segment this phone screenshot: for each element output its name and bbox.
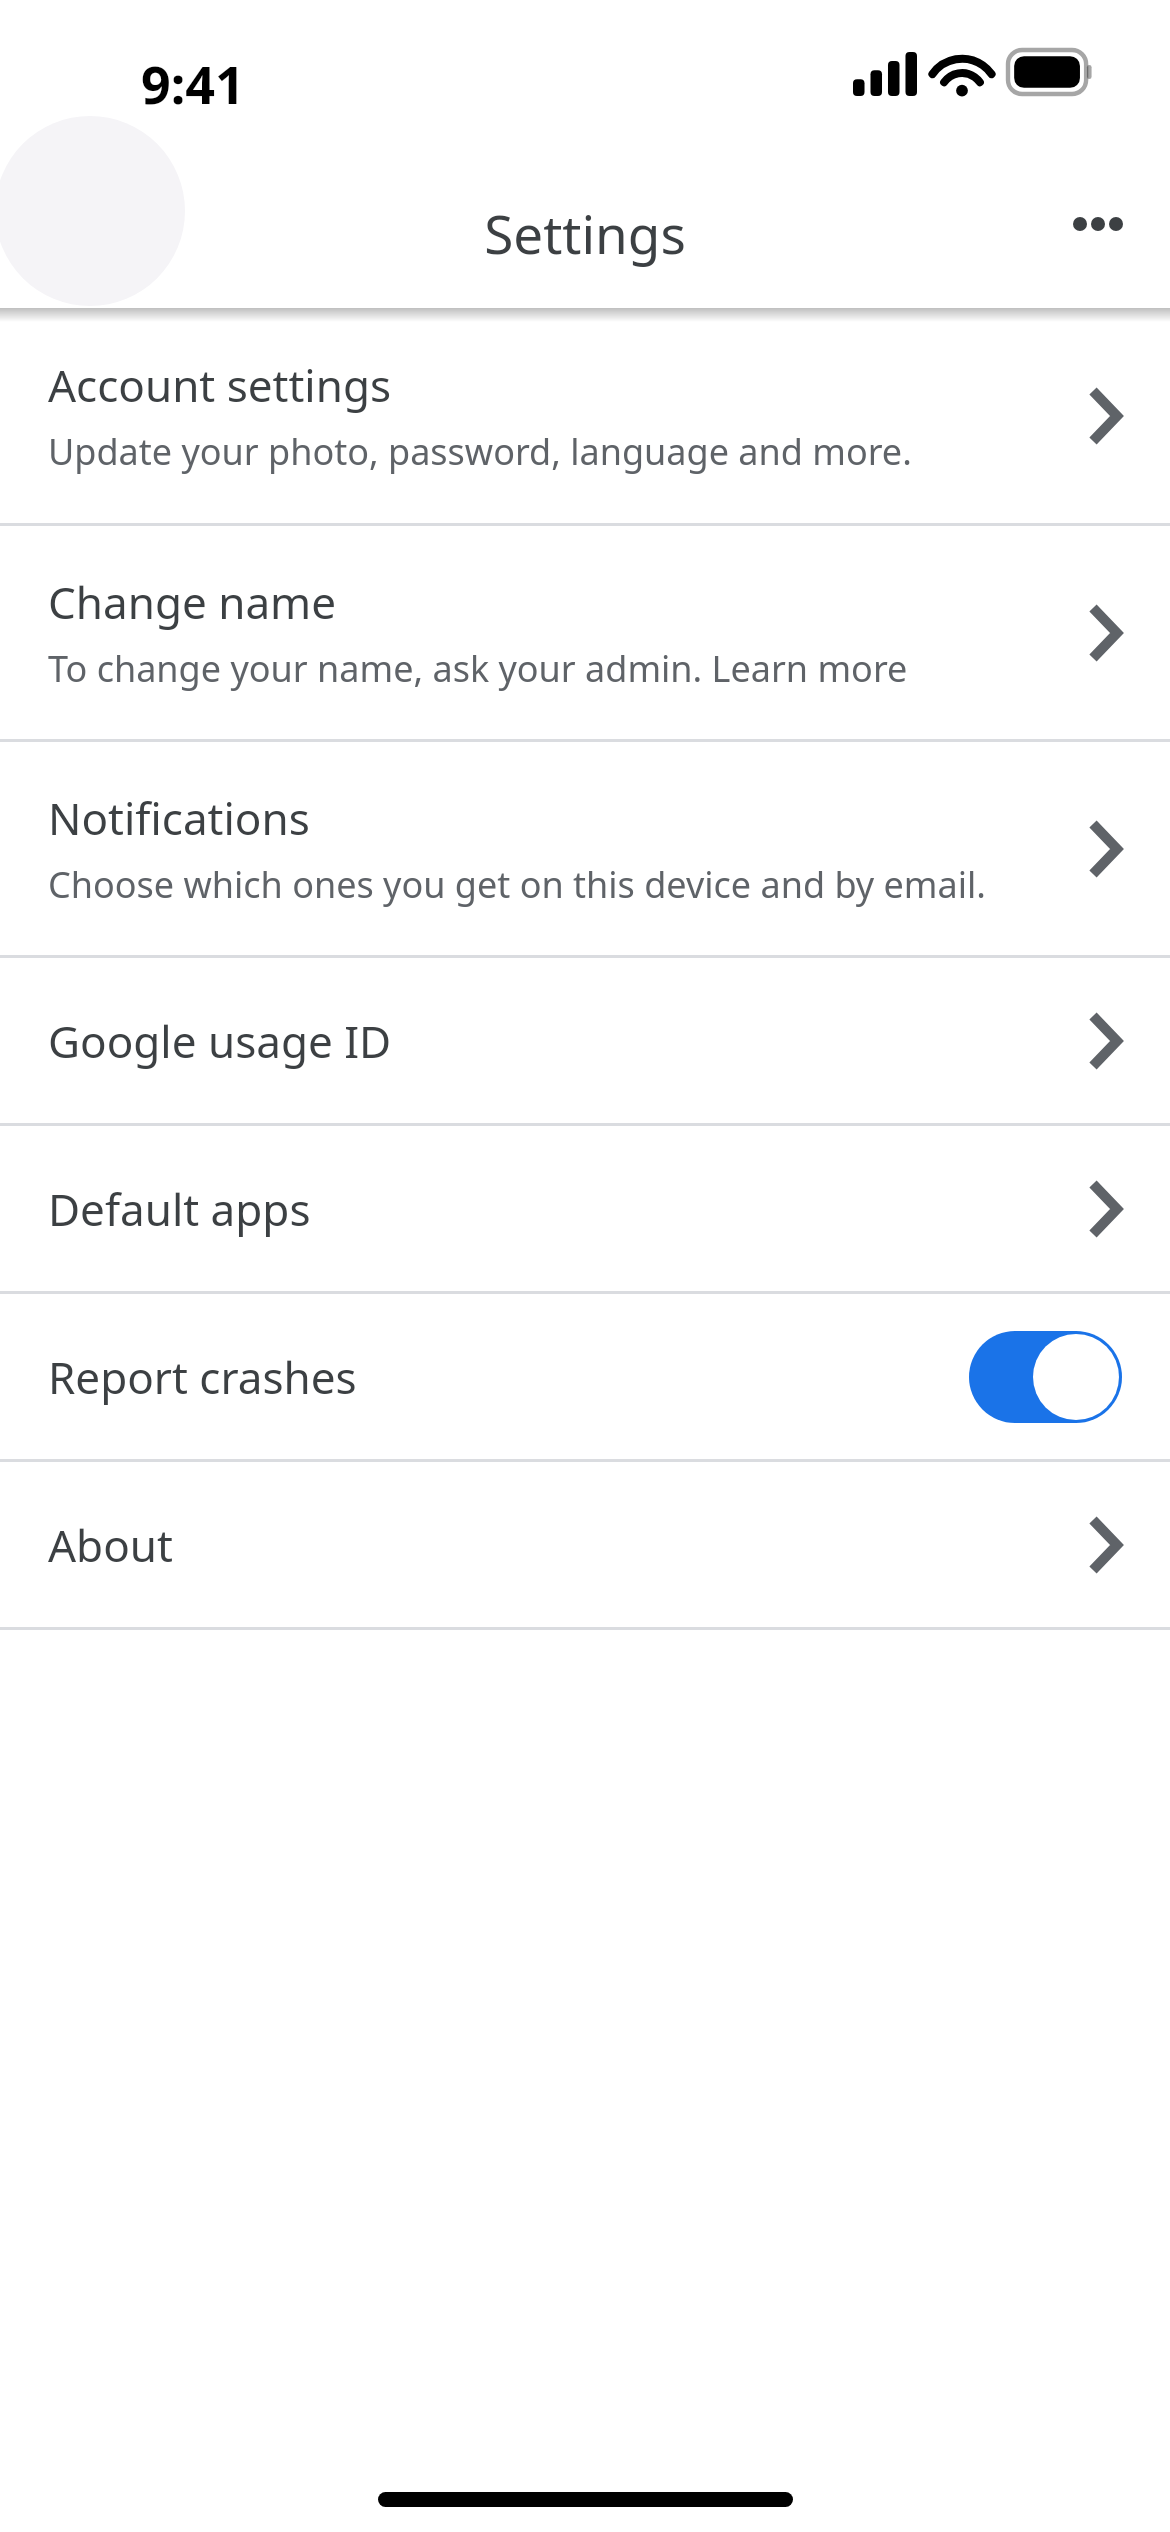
button[interactable]: Account settings bbox=[0, 308, 1170, 523]
staticText: Google usage ID bbox=[48, 1011, 1088, 1071]
button[interactable]: About bbox=[0, 1462, 1170, 1627]
button[interactable]: Change name bbox=[0, 526, 1170, 739]
staticText: Change name bbox=[48, 572, 337, 632]
staticText: Choose which ones you get on this device… bbox=[48, 860, 986, 909]
button[interactable]: Report crashes toggle bbox=[969, 1331, 1122, 1423]
button[interactable]: Notifications bbox=[0, 742, 1170, 955]
staticText: Notifications bbox=[48, 788, 310, 848]
staticText: About bbox=[48, 1515, 1088, 1575]
staticText: Default apps bbox=[48, 1179, 1088, 1239]
staticText: Update your photo, password, language an… bbox=[48, 427, 912, 476]
staticText: Account settings bbox=[48, 355, 392, 415]
button[interactable]: Default apps bbox=[0, 1126, 1170, 1291]
staticText: To change your name, ask your admin. Lea… bbox=[48, 644, 908, 693]
button[interactable]: Report crashes bbox=[0, 1294, 1170, 1459]
staticText: Report crashes bbox=[48, 1347, 969, 1407]
staticText: 9:41 bbox=[141, 48, 245, 119]
button[interactable]: Google usage ID bbox=[0, 958, 1170, 1123]
button[interactable]: More options bbox=[1046, 172, 1150, 276]
staticText: Settings bbox=[0, 197, 1170, 269]
